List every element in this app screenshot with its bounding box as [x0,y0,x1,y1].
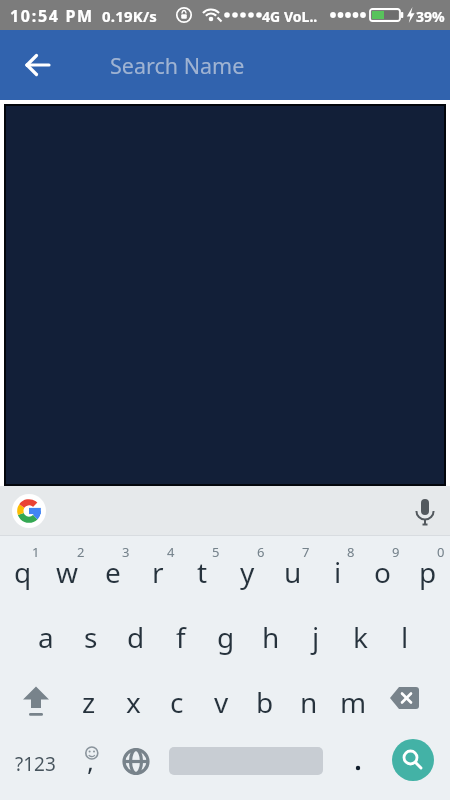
staticText: 2 [77,543,85,561]
staticText: Search Name [110,51,245,80]
button[interactable]: k [338,601,383,666]
staticText: z [82,683,96,721]
staticText: , [87,743,94,778]
button[interactable]: s [68,601,113,666]
staticText: t [197,553,208,591]
staticText: j [312,618,320,656]
staticText: VoL.. [284,7,318,26]
staticText: b [256,683,274,721]
staticText: r [152,553,164,591]
staticText: 1 [32,543,40,561]
staticText: 4G [262,7,281,26]
staticText: 7 [302,543,310,561]
button[interactable]: v [199,666,243,731]
staticText: n [300,683,318,721]
button[interactable]: l [383,601,427,666]
staticText: h [262,618,280,656]
staticText: ?123 [15,751,56,777]
staticText: 6 [257,543,265,561]
button[interactable]: j [293,601,338,666]
staticText: 0 [437,543,445,561]
staticText: v [214,683,229,721]
staticText: a [38,618,54,656]
button[interactable]: b [243,666,287,731]
button[interactable] [392,739,434,781]
button[interactable] [403,490,447,534]
staticText: q [14,553,32,591]
button[interactable]: h [248,601,293,666]
button[interactable]: Search Name [110,30,245,100]
button[interactable]: t [180,536,225,601]
button[interactable] [0,666,67,731]
staticText: 9 [392,543,400,561]
staticText: y [240,553,255,591]
staticText: 39% [416,7,445,26]
button[interactable] [12,494,46,528]
button[interactable]: q [0,536,45,601]
staticText: i [334,553,342,591]
button[interactable]: , [66,731,116,796]
button[interactable]: w [45,536,90,601]
staticText: p [419,553,437,591]
staticText: 3 [122,543,130,561]
staticText: x [126,683,141,721]
button[interactable] [336,731,380,796]
button[interactable]: a [23,601,68,666]
button[interactable] [14,42,60,88]
button[interactable] [113,731,159,796]
staticText: k [353,618,368,656]
button[interactable]: f [158,601,203,666]
button[interactable]: z [67,666,111,731]
staticText: w [56,553,79,591]
button[interactable]: r [135,536,180,601]
staticText: 5 [212,543,220,561]
staticText: 10:54 PM [10,5,94,27]
button[interactable]: ?123 [0,731,62,796]
button[interactable]: c [155,666,199,731]
staticText: e [105,553,121,591]
button[interactable]: p [405,536,450,601]
staticText: o [374,553,391,591]
staticText: u [284,553,302,591]
button[interactable]: x [111,666,155,731]
button[interactable]: n [287,666,331,731]
button[interactable]: u [270,536,315,601]
staticText: g [217,618,235,656]
button[interactable]: y [225,536,270,601]
button[interactable]: g [203,601,248,666]
staticText: l [401,618,409,656]
button[interactable]: i [315,536,360,601]
staticText: c [170,683,184,721]
staticText: s [84,618,98,656]
staticText: 0.19K/s [102,6,158,26]
staticText: 8 [347,543,355,561]
button[interactable]: d [113,601,158,666]
staticText: 4 [167,543,175,561]
staticText: f [176,618,186,656]
staticText: d [127,618,145,656]
button[interactable]: e [90,536,135,601]
button[interactable] [375,666,447,731]
button[interactable]: o [360,536,405,601]
staticText: m [340,683,367,721]
button[interactable]: m [331,666,375,731]
